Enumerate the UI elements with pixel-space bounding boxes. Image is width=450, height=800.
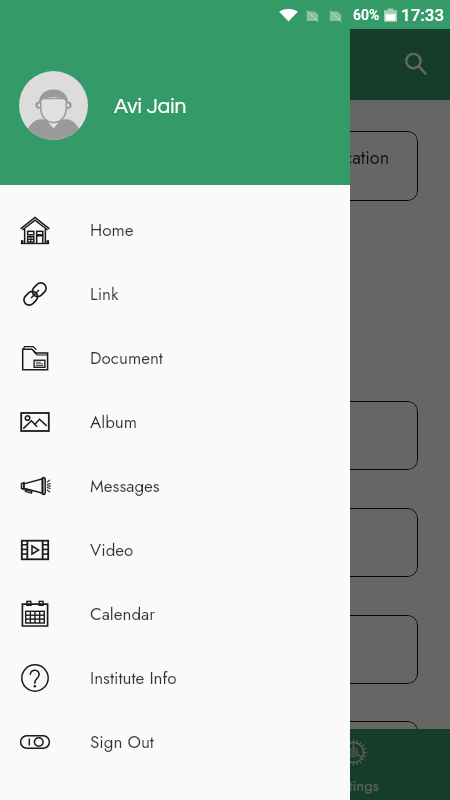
button[interactable]: Events: [101, 729, 202, 800]
button[interactable]: Video: [0, 518, 350, 582]
staticText: 17:33: [401, 5, 445, 25]
staticText: Calendar: [90, 602, 156, 627]
staticText: 60%: [353, 7, 380, 23]
staticText: Messages: [90, 474, 160, 499]
button[interactable]: Link: [0, 262, 350, 326]
button[interactable]: [32, 721, 418, 790]
staticText: Document: [90, 346, 163, 371]
button[interactable]: [32, 615, 418, 684]
button[interactable]: Document: [0, 326, 350, 390]
button[interactable]: Album: [0, 390, 350, 454]
button[interactable]: Messages: [0, 454, 350, 518]
staticText: Link: [90, 282, 119, 307]
button[interactable]: Home: [0, 729, 101, 800]
button[interactable]: Sign Out: [0, 710, 350, 774]
button[interactable]: [32, 508, 418, 577]
staticText: Settings: [329, 775, 379, 797]
button[interactable]: Calendar: [0, 582, 350, 646]
button[interactable]: Notification: [32, 131, 418, 201]
staticText: Notification: [301, 145, 390, 171]
staticText: Album: [90, 410, 138, 435]
staticText: Home: [90, 218, 134, 243]
staticText: Sign Out: [90, 730, 154, 755]
staticText: Institute Info: [90, 666, 177, 691]
button[interactable]: [32, 401, 418, 470]
button[interactable]: Search: [392, 40, 440, 88]
button[interactable]: Settings: [303, 729, 404, 800]
button[interactable]: Institute Info: [0, 646, 350, 710]
staticText: Avi Jain: [114, 96, 187, 118]
button[interactable]: Home: [0, 198, 350, 262]
staticText: Video: [90, 538, 134, 563]
